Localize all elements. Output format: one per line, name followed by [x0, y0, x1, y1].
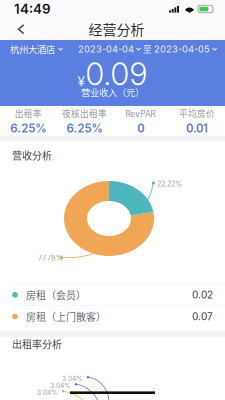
button[interactable]: 房租（会员）: [0, 284, 225, 305]
staticText: 平均房价: [179, 107, 215, 119]
staticText: 3.04%: [62, 374, 83, 382]
staticText: 出租率分析: [12, 337, 62, 351]
staticText: 出租率: [15, 107, 42, 119]
staticText: 2023-04-05: [154, 43, 210, 55]
staticText: 房租（上门散客）: [26, 309, 106, 324]
staticText: 2023-04-04: [78, 43, 134, 55]
staticText: 0: [137, 121, 144, 135]
staticText: 6.25%: [66, 121, 102, 135]
staticText: 0.02: [192, 289, 213, 301]
staticText: 3.04%: [37, 388, 58, 396]
staticText: 经营分析: [88, 19, 144, 39]
button[interactable]: 2023-04-04: [78, 41, 141, 57]
button[interactable]: 杭州大酒店: [0, 40, 63, 58]
staticText: 至: [143, 43, 152, 55]
staticText: 22.22%: [157, 179, 182, 188]
button[interactable]: Back: [8, 19, 34, 39]
staticText: 6.25%: [10, 121, 46, 135]
staticText: 营收分析: [12, 148, 52, 162]
staticText: 房租（会员）: [26, 288, 86, 302]
staticText: RevPAR: [125, 107, 156, 119]
button[interactable]: 房租（上门散客）: [0, 306, 225, 327]
button[interactable]: 2023-04-05: [154, 41, 217, 57]
staticText: 营业收入（元）: [81, 85, 144, 99]
staticText: 0.09: [85, 55, 147, 92]
staticText: 夜核出租率: [62, 107, 107, 119]
staticText: 77.78%: [38, 253, 63, 262]
staticText: 3.04%: [50, 381, 71, 389]
staticText: 0.01: [186, 121, 208, 135]
staticText: 14:49: [14, 1, 51, 17]
staticText: 杭州大酒店: [10, 42, 55, 56]
staticText: 0.07: [192, 310, 213, 323]
staticText: ¥: [77, 73, 84, 89]
